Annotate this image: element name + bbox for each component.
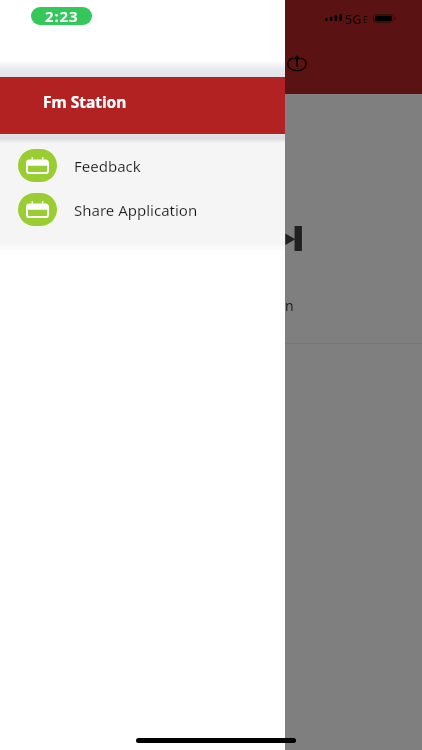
button[interactable]: Skip next xyxy=(285,226,303,251)
button[interactable]: Fm Station xyxy=(0,77,285,134)
button[interactable]: Close navigation drawer xyxy=(0,0,422,750)
staticText: Feedback xyxy=(74,156,141,176)
staticText: Share Application xyxy=(74,200,198,220)
staticText: 2:23 xyxy=(45,7,79,24)
staticText: Fm Station xyxy=(43,91,127,112)
button[interactable]: Share xyxy=(287,55,307,72)
staticText: E xyxy=(363,14,368,26)
button[interactable]: Feedback xyxy=(0,143,285,187)
staticText: n xyxy=(285,296,294,315)
staticText: 5G xyxy=(345,11,362,28)
button[interactable]: Share Application xyxy=(0,187,285,231)
